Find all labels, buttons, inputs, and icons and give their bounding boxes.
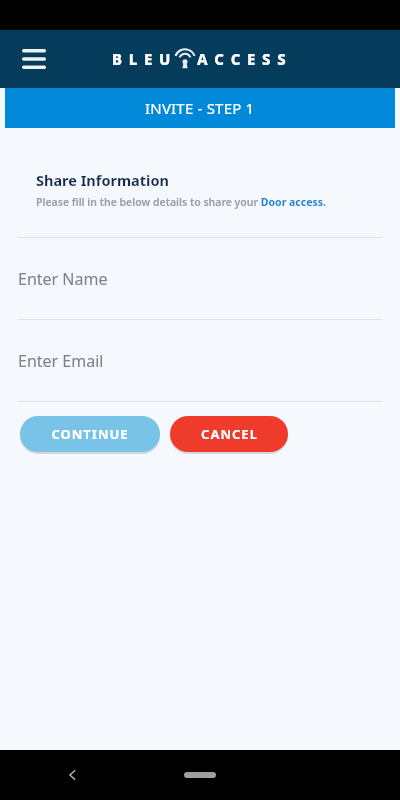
staticText: Enter Name — [18, 268, 108, 290]
button[interactable]: CANCEL — [170, 416, 288, 452]
button[interactable]: Enter Name — [0, 238, 400, 319]
button[interactable]: Back — [58, 760, 88, 790]
button[interactable]: Home — [184, 772, 216, 778]
staticText: INVITE - STEP 1 — [145, 98, 255, 118]
button[interactable]: Menu — [14, 39, 54, 79]
staticText: Please fill in the below details to shar… — [36, 195, 326, 209]
staticText: A C C E S S — [197, 49, 288, 69]
button[interactable]: Enter Email — [0, 320, 400, 401]
staticText: CANCEL — [201, 425, 258, 443]
button[interactable]: CONTINUE — [20, 416, 160, 452]
staticText: Enter Email — [18, 350, 104, 372]
staticText: CONTINUE — [51, 425, 129, 443]
staticText: B L E U — [112, 49, 172, 69]
staticText: Share Information — [36, 170, 169, 190]
